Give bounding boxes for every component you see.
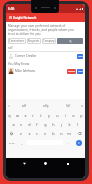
staticText: c	[36, 131, 38, 136]
staticText: w	[16, 113, 19, 118]
button[interactable]: Requests	[27, 38, 41, 44]
button[interactable]: Sdf	[57, 100, 79, 111]
button[interactable]: Backspace	[73, 129, 85, 138]
button[interactable]: Recents	[64, 160, 71, 167]
button[interactable]: More suggestions	[6, 100, 12, 111]
staticText: 6:06	[8, 7, 15, 11]
staticText: l	[77, 122, 78, 127]
staticText: e	[24, 113, 27, 118]
staticText: k	[68, 122, 71, 127]
staticText: Company	[43, 39, 55, 43]
button[interactable]: j	[57, 120, 65, 129]
staticText: u	[56, 113, 59, 118]
staticText: i	[65, 113, 66, 118]
staticText: Add	[78, 55, 83, 58]
staticText: z	[20, 131, 22, 136]
staticText: Knight Network	[13, 16, 37, 20]
staticText: Mike Ishihara	[15, 69, 35, 73]
staticText: p	[80, 113, 83, 118]
staticText: h	[52, 122, 55, 127]
button[interactable]: Corner Cresfar	[8, 53, 83, 59]
staticText: .	[67, 140, 69, 145]
button[interactable]: sdfg	[35, 100, 57, 111]
staticText: b	[52, 131, 55, 136]
button[interactable]: Back	[21, 160, 28, 167]
button[interactable]: e	[21, 111, 29, 120]
button[interactable]: i	[61, 111, 69, 120]
staticText: Sdf	[66, 104, 71, 108]
button[interactable]: m	[65, 129, 73, 138]
button[interactable]: Shift	[6, 129, 17, 138]
staticText: sdfg	[43, 104, 49, 108]
button[interactable]: g	[41, 120, 49, 129]
button[interactable]: Company	[42, 38, 56, 44]
button[interactable]: Mike Ishihara	[8, 68, 83, 74]
button[interactable]: Home	[42, 160, 49, 167]
button[interactable]: b	[49, 129, 57, 138]
staticText: y	[48, 113, 50, 118]
staticText: Manage your own preferred network of org…	[8, 24, 79, 36]
button[interactable]: Add	[77, 54, 83, 59]
button[interactable]: a	[9, 120, 17, 129]
staticText: j	[61, 122, 62, 127]
button[interactable]: t	[37, 111, 45, 120]
button[interactable]: ,	[18, 138, 26, 147]
button[interactable]: f	[33, 120, 41, 129]
button[interactable]: u	[53, 111, 61, 120]
staticText: x	[28, 131, 31, 136]
staticText: You May Know	[8, 62, 30, 66]
button[interactable]: n	[57, 129, 65, 138]
button[interactable]: c	[33, 129, 41, 138]
button[interactable]: l	[73, 120, 81, 129]
button[interactable]: h	[49, 120, 57, 129]
staticText: o	[72, 113, 75, 118]
staticText: m	[67, 131, 71, 136]
button[interactable]: k	[65, 120, 73, 129]
staticText: sdf	[8, 46, 13, 50]
staticText: r	[32, 113, 34, 118]
button[interactable]: w	[13, 111, 21, 120]
button[interactable]: ?123	[6, 138, 18, 147]
button[interactable]: Keyboard settings	[79, 100, 85, 111]
staticText: Requests	[28, 39, 40, 43]
staticText: s	[20, 122, 22, 127]
button[interactable]: y	[45, 111, 53, 120]
staticText: Connections	[9, 39, 25, 43]
staticText: Splunk	[68, 70, 76, 73]
button[interactable]: r	[29, 111, 37, 120]
button[interactable]: v	[41, 129, 49, 138]
staticText: q	[8, 113, 11, 118]
staticText: n	[60, 131, 63, 136]
button[interactable]: Search	[57, 38, 83, 44]
button[interactable]: z	[17, 129, 25, 138]
button[interactable]: Splunk	[67, 69, 76, 74]
button[interactable]: Connections	[8, 38, 26, 44]
staticText: a	[12, 122, 15, 127]
button[interactable]: Send	[76, 140, 82, 146]
staticText: t	[40, 113, 42, 118]
staticText: Add	[78, 70, 83, 73]
staticText: f	[36, 122, 38, 127]
button[interactable]: d	[25, 120, 33, 129]
staticText: ,	[21, 140, 23, 145]
staticText: sdf	[22, 104, 26, 108]
button[interactable]: Knight Network	[6, 13, 85, 22]
staticText: Corner Cresfar	[15, 54, 37, 58]
staticText: v	[44, 131, 46, 136]
staticText: g	[44, 122, 47, 127]
button[interactable]: s	[17, 120, 25, 129]
button[interactable]: x	[25, 129, 33, 138]
staticText: ?123	[9, 141, 15, 144]
button[interactable]: Add	[77, 69, 83, 74]
button[interactable]: o	[69, 111, 77, 120]
button[interactable]: p	[77, 111, 85, 120]
button[interactable]: sdf	[12, 100, 35, 111]
button[interactable]: q	[6, 111, 13, 120]
staticText: d	[28, 122, 31, 127]
